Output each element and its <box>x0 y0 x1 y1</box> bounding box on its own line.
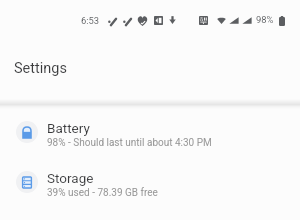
button[interactable]: Battery <box>0 107 300 157</box>
staticText: Battery <box>47 120 90 136</box>
staticText: 98% - Should last until about 4:30 PM <box>47 137 212 149</box>
staticText: Storage <box>47 170 94 186</box>
button[interactable]: Storage <box>0 157 300 207</box>
staticText: Settings <box>14 60 67 77</box>
staticText: 39% used - 78.39 GB free <box>47 187 158 199</box>
staticText: 98% <box>256 14 274 25</box>
staticText: 6:53 <box>81 15 100 26</box>
